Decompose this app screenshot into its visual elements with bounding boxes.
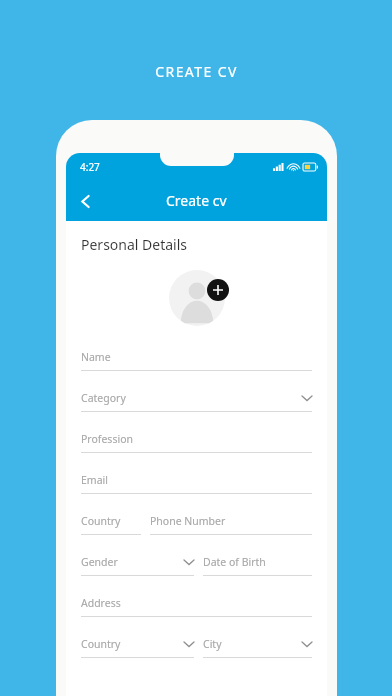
button[interactable]: Address (81, 589, 312, 630)
staticText: Address (81, 596, 121, 610)
button[interactable]: Profession (81, 425, 312, 466)
button[interactable]: City (203, 630, 312, 671)
button[interactable]: Country (81, 630, 194, 671)
staticText: Create cv (166, 191, 227, 210)
button[interactable]: Gender (81, 548, 194, 589)
staticText: Profession (81, 432, 133, 446)
button[interactable]: Email (81, 466, 312, 507)
staticText: Gender (81, 555, 118, 569)
staticText: Country (81, 514, 121, 528)
staticText: CREATE CV (155, 62, 238, 81)
staticText: 4:27 (80, 160, 100, 174)
button[interactable]: Back (66, 182, 104, 220)
staticText: Phone Number (150, 514, 226, 528)
button[interactable]: Date of Birth (203, 548, 312, 589)
staticText: Country (81, 637, 121, 651)
staticText: Name (81, 350, 111, 364)
button[interactable]: Category (81, 384, 312, 425)
staticText: Date of Birth (203, 555, 266, 569)
button[interactable]: Country (81, 507, 141, 548)
staticText: City (203, 637, 222, 651)
button[interactable]: Add photo (207, 279, 229, 301)
staticText: Personal Details (81, 235, 188, 254)
button[interactable]: Name (81, 343, 312, 384)
button[interactable]: Phone Number (150, 507, 312, 548)
staticText: Email (81, 473, 108, 487)
staticText: Category (81, 391, 126, 405)
